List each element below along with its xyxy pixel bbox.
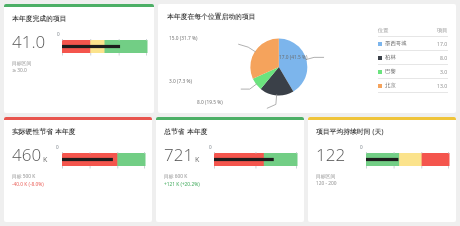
- staticText: 17.0 (41.5 %): [279, 54, 308, 61]
- staticText: 120 - 200: [316, 180, 337, 187]
- staticText: 本年度完成的项目: [12, 14, 67, 23]
- button[interactable]: 本年度在每个位置启动的项目: [158, 4, 456, 113]
- staticText: 本年度在每个位置启动的项目: [167, 12, 256, 21]
- staticText: 项目平均持续时间 (天): [316, 127, 384, 136]
- button[interactable]: 巴黎: [378, 65, 448, 78]
- staticText: K: [43, 155, 48, 165]
- staticText: -40.0 K (-8.0%): [12, 181, 44, 188]
- staticText: 目标 500 K: [12, 173, 36, 180]
- button[interactable]: 北京: [378, 79, 448, 92]
- staticText: 8.0 (19.5 %): [197, 99, 223, 106]
- button[interactable]: 实际硬性节省: [4, 117, 152, 222]
- staticText: 实际硬性节省: [12, 127, 53, 136]
- staticText: 目标区间: [316, 173, 336, 179]
- staticText: 总节省: [164, 127, 185, 136]
- staticText: 墨西哥城: [385, 40, 437, 47]
- staticText: 目标 600 K: [164, 173, 188, 180]
- staticText: 目标区间: [12, 60, 32, 66]
- button[interactable]: 项目平均持续时间 (天): [308, 117, 456, 222]
- staticText: 巴黎: [385, 68, 440, 75]
- staticText: 3.0: [440, 68, 448, 75]
- button[interactable]: 柏林: [378, 51, 448, 64]
- button[interactable]: 墨西哥城: [378, 37, 448, 50]
- staticText: +121 K (+20.2%): [164, 181, 200, 188]
- staticText: 721: [164, 143, 194, 166]
- staticText: ≥ 30.0: [12, 67, 27, 74]
- staticText: 项目: [437, 27, 448, 34]
- staticText: 本年度: [187, 127, 208, 136]
- staticText: 位置: [378, 27, 437, 34]
- staticText: 本年度: [55, 127, 76, 136]
- staticText: 41.0: [12, 30, 46, 53]
- staticText: 柏林: [385, 54, 440, 61]
- staticText: 460: [12, 143, 42, 166]
- button[interactable]: 总节省: [156, 117, 304, 222]
- staticText: 13.0: [437, 82, 448, 89]
- staticText: K: [195, 155, 200, 165]
- staticText: 3.0 (7.3 %): [169, 78, 192, 85]
- staticText: 15.0 (31.7 %): [169, 35, 198, 42]
- button[interactable]: 本年度完成的项目: [4, 4, 154, 113]
- staticText: 122: [316, 143, 346, 166]
- staticText: 北京: [385, 82, 437, 89]
- staticText: 8.0: [440, 54, 448, 61]
- staticText: 17.0: [437, 40, 448, 47]
